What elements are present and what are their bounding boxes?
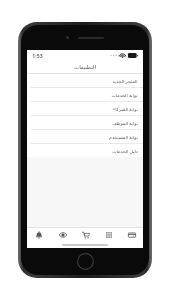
staticText: بوابة الخدمات <box>111 92 138 98</box>
staticText: بوابة الشركاء <box>113 106 138 112</box>
button[interactable]: دليل الخدمات <box>27 144 143 157</box>
staticText: التطبيقات <box>74 64 96 70</box>
button[interactable]: Explore <box>51 228 74 242</box>
staticText: 1:53 <box>32 52 43 59</box>
button[interactable]: بوابة الخدمات <box>27 88 143 102</box>
button[interactable]: بوابة الشركاء <box>27 102 143 116</box>
button[interactable]: Cart <box>74 228 97 242</box>
button[interactable]: المتجر الجديد <box>27 74 143 88</box>
button[interactable]: Apps <box>97 228 120 242</box>
button[interactable]: بوابة الموظف <box>27 116 143 130</box>
button[interactable]: Wallet <box>120 228 143 242</box>
button[interactable]: Notifications <box>27 228 51 242</box>
staticText: دليل الخدمات <box>112 148 138 154</box>
staticText: بوابة المستخدم <box>109 134 138 140</box>
button[interactable]: بوابة المستخدم <box>27 130 143 144</box>
staticText: المتجر الجديد <box>112 78 138 84</box>
staticText: بوابة الموظف <box>112 120 138 126</box>
